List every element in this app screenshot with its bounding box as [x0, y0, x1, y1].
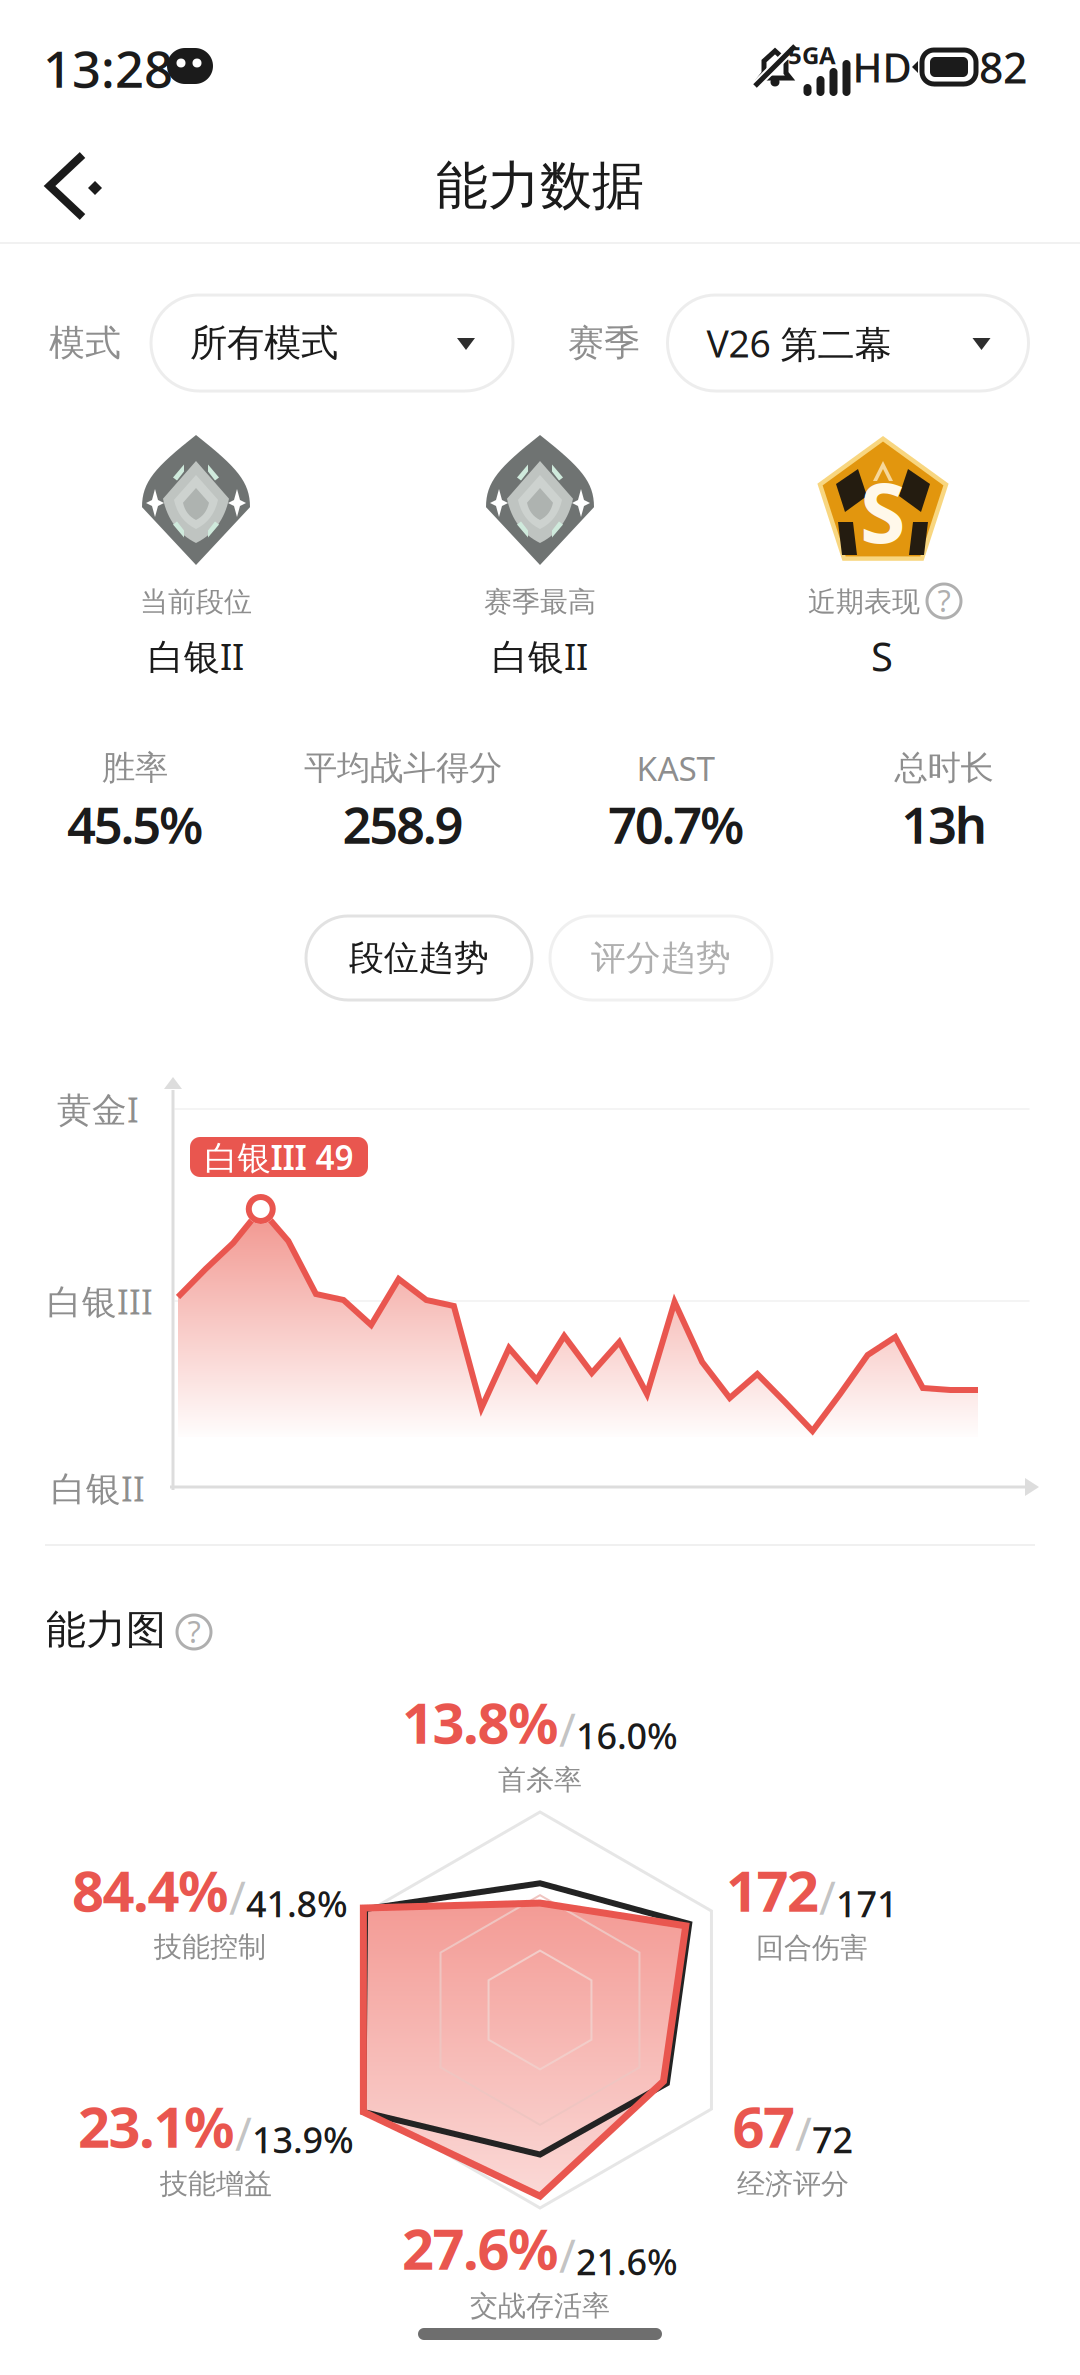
button[interactable]: 所有模式	[151, 295, 513, 391]
staticText: 171	[836, 1879, 898, 1927]
staticText: /	[819, 1867, 836, 1927]
staticText: S	[860, 456, 906, 566]
staticText: S	[871, 629, 893, 682]
staticText: 172	[726, 1853, 819, 1927]
staticText: 45.5%	[67, 790, 203, 858]
staticText: 黄金I	[57, 1086, 139, 1132]
staticText: 13h	[901, 790, 987, 858]
staticText: 近期表现	[808, 585, 920, 619]
button[interactable]: V26 第二幕	[667, 295, 1028, 391]
staticText: /	[229, 1867, 246, 1927]
button[interactable]: Back	[23, 131, 133, 241]
staticText: 白银III	[47, 1278, 153, 1324]
staticText: 13.9%	[252, 2115, 354, 2163]
staticText: 技能控制	[154, 1930, 266, 1964]
staticText: 41.8%	[246, 1879, 348, 1927]
staticText: 交战存活率	[470, 2289, 610, 2323]
staticText: 27.6%	[402, 2211, 559, 2285]
button[interactable]: 段位趋势	[306, 916, 532, 1000]
staticText: 模式	[49, 321, 121, 365]
staticText: 能力图	[46, 1605, 166, 1654]
staticText: 首杀率	[498, 1763, 582, 1797]
staticText: 72	[812, 2115, 853, 2163]
staticText: 白银II	[492, 632, 588, 680]
staticText: 82	[979, 39, 1027, 95]
staticText: 赛季	[568, 321, 640, 365]
staticText: /	[795, 2103, 812, 2163]
staticText: 5GA	[788, 39, 836, 71]
staticText: 21.6%	[576, 2237, 678, 2285]
staticText: /	[235, 2103, 252, 2163]
staticText: 白银II	[148, 632, 244, 680]
staticText: 13:28	[43, 34, 173, 102]
staticText: 能力数据	[436, 154, 644, 218]
staticText: 平均战斗得分	[304, 747, 502, 788]
staticText: ?	[187, 1611, 200, 1651]
staticText: 技能增益	[160, 2167, 272, 2201]
staticText: 13.8%	[402, 1685, 559, 1759]
staticText: 赛季最高	[484, 585, 596, 619]
staticText: 23.1%	[78, 2089, 235, 2163]
staticText: 总时长	[894, 747, 993, 788]
staticText: HD	[852, 40, 911, 93]
staticText: 84.4%	[72, 1853, 229, 1927]
staticText: ?	[937, 580, 950, 620]
staticText: 70.7%	[608, 790, 744, 858]
staticText: 胜率	[102, 747, 168, 788]
staticText: 所有模式	[190, 320, 338, 366]
staticText: /	[559, 2225, 576, 2285]
staticText: /	[559, 1699, 576, 1759]
staticText: 16.0%	[576, 1711, 678, 1759]
staticText: KAST	[636, 746, 715, 790]
staticText: 段位趋势	[349, 937, 489, 979]
staticText: V26 第二幕	[706, 318, 891, 368]
staticText: 白银II	[51, 1465, 145, 1511]
staticText: 经济评分	[737, 2167, 849, 2201]
staticText: 白银III 49	[204, 1135, 353, 1179]
button[interactable]: 评分趋势	[550, 916, 772, 1000]
staticText: 回合伤害	[756, 1931, 868, 1965]
staticText: 当前段位	[140, 585, 252, 619]
staticText: 67	[732, 2089, 795, 2163]
staticText: 评分趋势	[591, 937, 731, 979]
staticText: 258.9	[342, 790, 464, 858]
